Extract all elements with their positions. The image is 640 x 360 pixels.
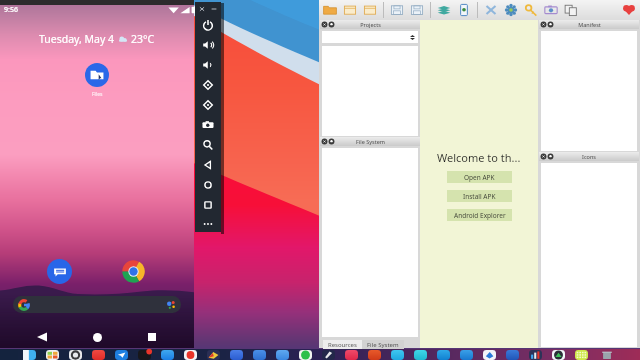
button[interactable]: Dock app <box>506 350 519 360</box>
button[interactable]: close <box>481 0 501 20</box>
button[interactable]: Dock app <box>552 350 565 360</box>
button[interactable]: Home <box>88 328 106 346</box>
button[interactable]: zoom <box>195 135 221 155</box>
button[interactable]: rotL <box>195 75 221 95</box>
staticText: Tuesday, May 4 <box>39 32 115 46</box>
button[interactable]: Resources <box>328 340 357 349</box>
button[interactable]: Dock app <box>184 350 197 360</box>
button[interactable]: Dock app <box>437 350 450 360</box>
button[interactable]: Install APK <box>447 190 512 202</box>
staticText: Icons <box>582 153 596 160</box>
button[interactable]: Dock app <box>161 350 174 360</box>
button[interactable]: Panel menu <box>547 21 554 28</box>
button[interactable]: Panel menu <box>328 21 335 28</box>
button[interactable]: Dock app <box>230 350 243 360</box>
staticText: Install APK <box>463 192 496 201</box>
staticText: Android Explorer <box>454 211 506 220</box>
button[interactable]: rotR <box>195 95 221 115</box>
button[interactable]: Trash <box>600 349 614 360</box>
staticText: File System <box>356 138 385 145</box>
staticText: Projects <box>360 21 381 28</box>
button[interactable]: Back <box>33 328 51 346</box>
button[interactable]: Panel menu <box>328 138 335 145</box>
staticText: File System <box>367 341 399 349</box>
button[interactable]: Close <box>199 6 205 12</box>
button[interactable]: Chrome <box>121 259 146 284</box>
button[interactable] <box>13 296 181 313</box>
button[interactable]: Dock app <box>345 350 358 360</box>
button[interactable]: power <box>195 15 221 35</box>
button[interactable]: Dock app <box>391 350 404 360</box>
button[interactable]: Close panel <box>321 138 328 145</box>
button[interactable]: Recents <box>143 328 161 346</box>
button[interactable]: Dock app <box>299 350 312 360</box>
button[interactable]: device <box>454 0 474 20</box>
button[interactable]: open <box>320 0 340 20</box>
button[interactable]: more <box>195 215 221 232</box>
button[interactable]: Close panel <box>540 21 547 28</box>
button[interactable]: camera <box>195 115 221 135</box>
button[interactable]: voldown <box>195 55 221 75</box>
button[interactable]: Dock app <box>207 350 220 360</box>
button[interactable]: Dock app <box>414 350 427 360</box>
button[interactable]: recent <box>195 195 221 215</box>
button[interactable]: Close panel <box>540 153 547 160</box>
button[interactable]: Panel menu <box>547 153 554 160</box>
button[interactable]: saveall <box>407 0 427 20</box>
staticText: 23°C <box>131 32 155 46</box>
staticText: Open APK <box>464 173 495 182</box>
button[interactable]: Android Explorer <box>447 209 512 221</box>
button[interactable]: new2 <box>360 0 380 20</box>
button[interactable]: Close panel <box>321 21 328 28</box>
button[interactable]: Open APK <box>447 171 512 183</box>
button[interactable]: Favorite <box>620 0 637 20</box>
button[interactable]: copy <box>561 0 581 20</box>
button[interactable]: Minimize <box>211 6 217 12</box>
button[interactable]: Dock app <box>368 350 381 360</box>
button[interactable]: Dock app <box>276 350 289 360</box>
button[interactable]: Dock app <box>529 350 542 360</box>
staticText: Welcome to th... <box>437 150 521 165</box>
staticText: Resources <box>328 341 357 349</box>
staticText: Files <box>92 91 103 98</box>
button[interactable]: Dock app <box>253 350 266 360</box>
button[interactable]: layers <box>434 0 454 20</box>
button[interactable]: gear <box>501 0 521 20</box>
button[interactable]: volup <box>195 35 221 55</box>
button[interactable]: Dock app <box>575 350 588 360</box>
button[interactable]: Files app <box>85 63 109 87</box>
button[interactable]: Dock app <box>92 350 105 360</box>
staticText: Manifest <box>578 21 601 28</box>
button[interactable] <box>322 31 418 43</box>
staticText: 9:56 <box>4 5 18 15</box>
button[interactable]: Dock app <box>138 350 151 360</box>
button[interactable]: Dock app <box>23 350 36 360</box>
button[interactable]: Dock app <box>460 350 473 360</box>
button[interactable]: Dock app <box>115 350 128 360</box>
button[interactable]: save <box>387 0 407 20</box>
button[interactable]: camera <box>541 0 561 20</box>
button[interactable]: Dock app <box>322 350 335 360</box>
button[interactable]: Messages <box>47 259 72 284</box>
button[interactable]: new <box>340 0 360 20</box>
button[interactable]: home <box>195 175 221 195</box>
button[interactable]: File System <box>367 340 399 349</box>
button[interactable]: Dock app <box>483 350 496 360</box>
button[interactable]: key <box>521 0 541 20</box>
button[interactable]: back <box>195 155 221 175</box>
button[interactable]: Dock app <box>46 350 59 360</box>
button[interactable]: Dock app <box>69 350 82 360</box>
